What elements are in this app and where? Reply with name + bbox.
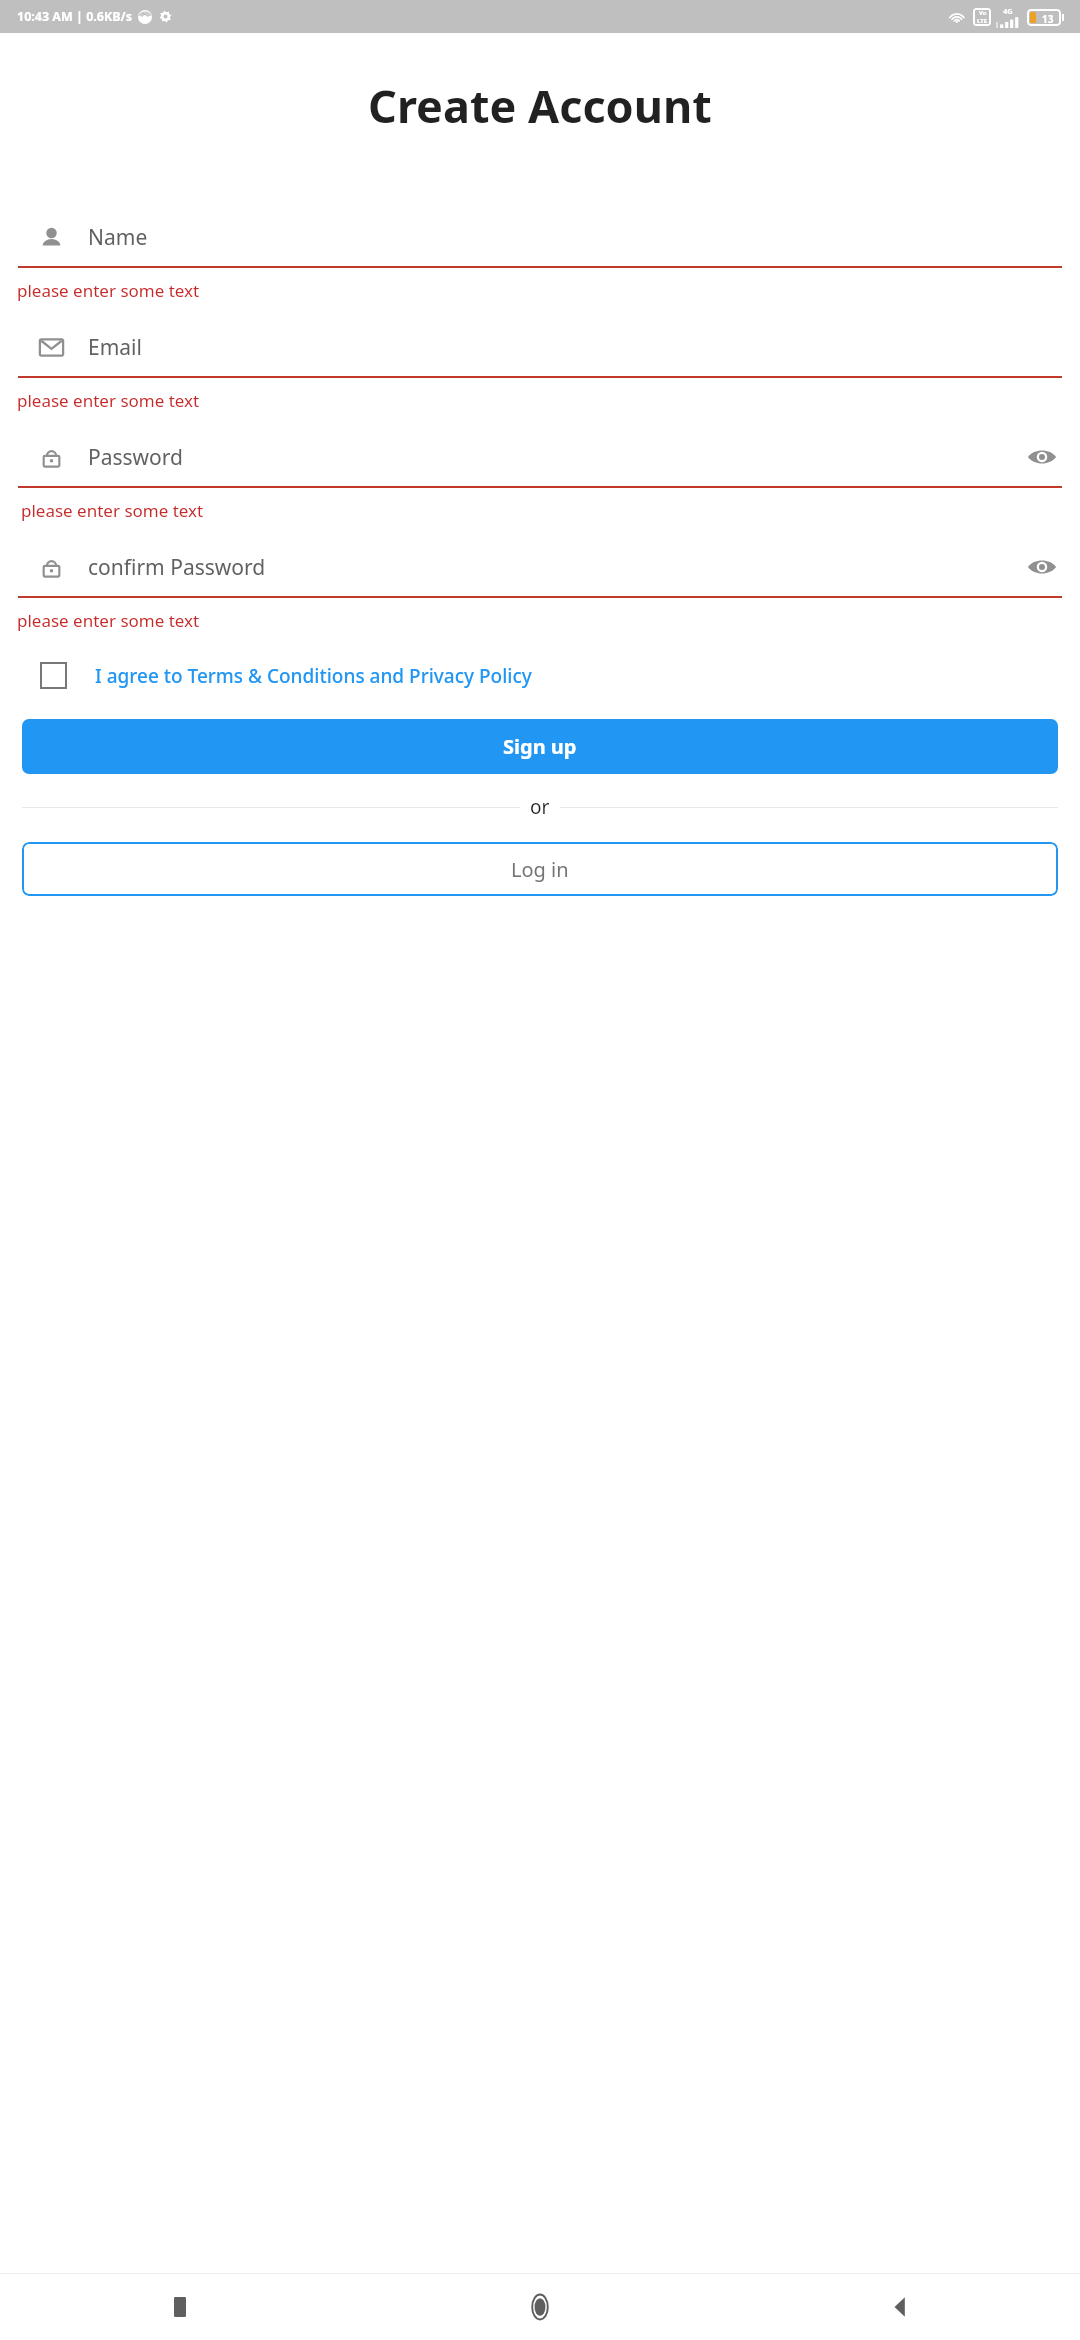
- staticText: please enter some text: [21, 499, 204, 522]
- staticText: Name: [88, 223, 148, 252]
- staticText: 10:43 AM | 0.6KB/s: [17, 8, 133, 25]
- button[interactable]: Home: [360, 2274, 720, 2340]
- button[interactable]: Password: [18, 428, 1062, 486]
- button[interactable]: Recent apps: [0, 2274, 360, 2340]
- staticText: Log in: [511, 856, 569, 883]
- staticText: Password: [88, 443, 183, 472]
- staticText: please enter some text: [17, 609, 200, 632]
- button[interactable]: confirm Password: [18, 538, 1062, 596]
- button[interactable]: Log in: [22, 842, 1058, 896]
- staticText: Vo: [979, 9, 987, 17]
- button[interactable]: Back: [720, 2274, 1080, 2340]
- staticText: 13: [1042, 12, 1054, 23]
- staticText: Sign up: [503, 733, 577, 760]
- staticText: confirm Password: [88, 553, 266, 582]
- staticText: or: [530, 794, 550, 820]
- staticText: Create Account: [368, 75, 712, 136]
- staticText: please enter some text: [17, 389, 200, 412]
- button[interactable]: Show password: [1022, 437, 1062, 477]
- button[interactable]: Name: [18, 208, 1062, 266]
- button[interactable]: I agree to Terms & Conditions and Privac…: [18, 662, 1062, 689]
- staticText: I agree to Terms & Conditions and Privac…: [95, 663, 532, 689]
- staticText: LTE: [977, 17, 988, 25]
- button[interactable]: Email: [18, 318, 1062, 376]
- staticText: 4G: [1003, 6, 1013, 16]
- button[interactable]: Show password: [1022, 547, 1062, 587]
- button[interactable]: Sign up: [22, 719, 1058, 774]
- staticText: please enter some text: [17, 279, 200, 302]
- staticText: Email: [88, 333, 142, 362]
